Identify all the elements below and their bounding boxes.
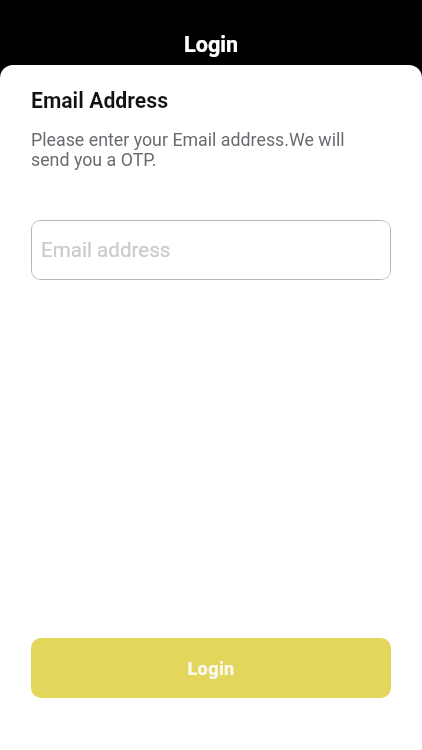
staticText: Please enter your Email address.We will … xyxy=(31,129,351,171)
staticText: Login xyxy=(184,32,239,57)
staticText: Login xyxy=(187,658,235,679)
staticText: Email Address xyxy=(31,88,169,113)
button[interactable]: Email address input field xyxy=(31,220,391,280)
staticText: Email address xyxy=(41,238,171,262)
button[interactable]: Login xyxy=(31,638,391,698)
